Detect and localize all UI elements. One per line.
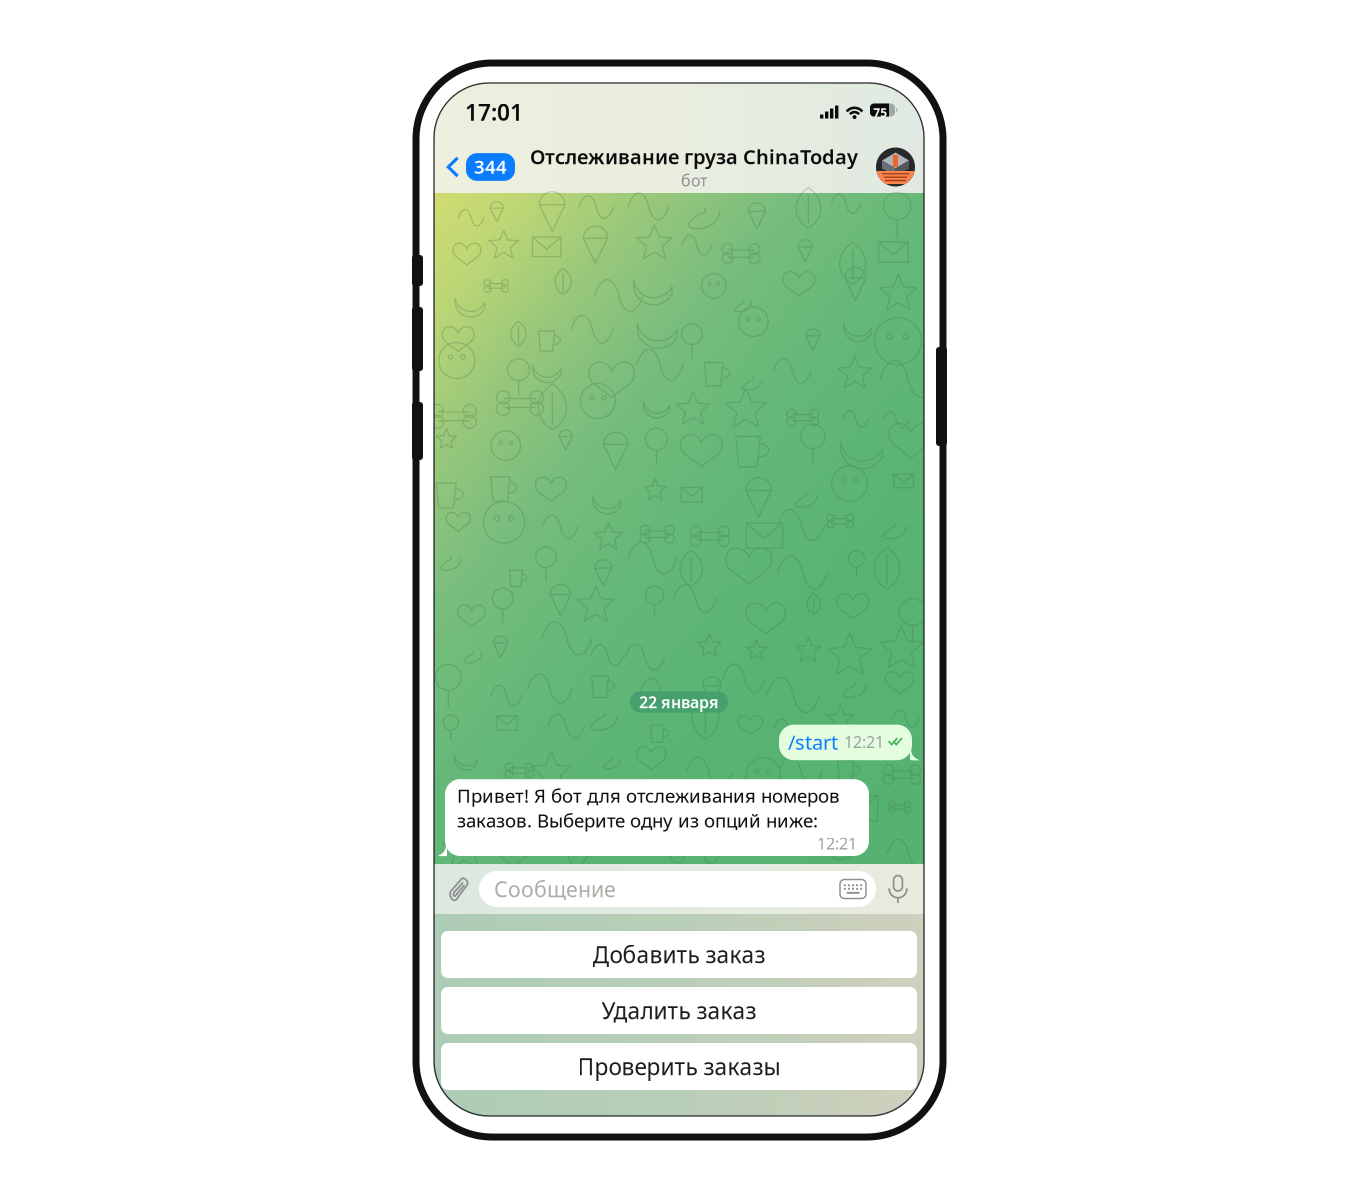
staticText: Проверить заказы xyxy=(577,1051,780,1081)
button[interactable]: Прикрепить xyxy=(448,874,471,903)
staticText: заказов. Выберите одну из опций ниже: xyxy=(457,808,818,833)
staticText: 344 xyxy=(474,154,507,179)
button[interactable]: Удалить заказ xyxy=(441,987,917,1034)
staticText: 12:21 xyxy=(817,833,857,854)
button[interactable]: Профиль бота xyxy=(876,139,924,195)
staticText: 17:01 xyxy=(465,97,523,127)
staticText: Удалить заказ xyxy=(601,995,756,1025)
staticText: Добавить заказ xyxy=(592,939,765,969)
staticText: бот xyxy=(681,170,707,191)
staticText: /start xyxy=(788,729,838,755)
staticText: Отслеживание груза ChinaToday xyxy=(530,143,858,170)
staticText: 75 xyxy=(873,104,887,120)
button[interactable]: Добавить заказ xyxy=(441,931,917,978)
button[interactable]: Голосовое сообщение xyxy=(887,874,909,904)
staticText: 22 января xyxy=(639,691,719,713)
staticText: Привет! Я бот для отслеживания номеров xyxy=(457,783,840,808)
button[interactable]: Клавиатура xyxy=(840,879,866,898)
button[interactable]: Проверить заказы xyxy=(441,1043,917,1090)
staticText: 12:21 xyxy=(844,731,884,752)
staticText: Сообщение xyxy=(494,875,616,903)
button[interactable]: 344 xyxy=(434,139,523,195)
